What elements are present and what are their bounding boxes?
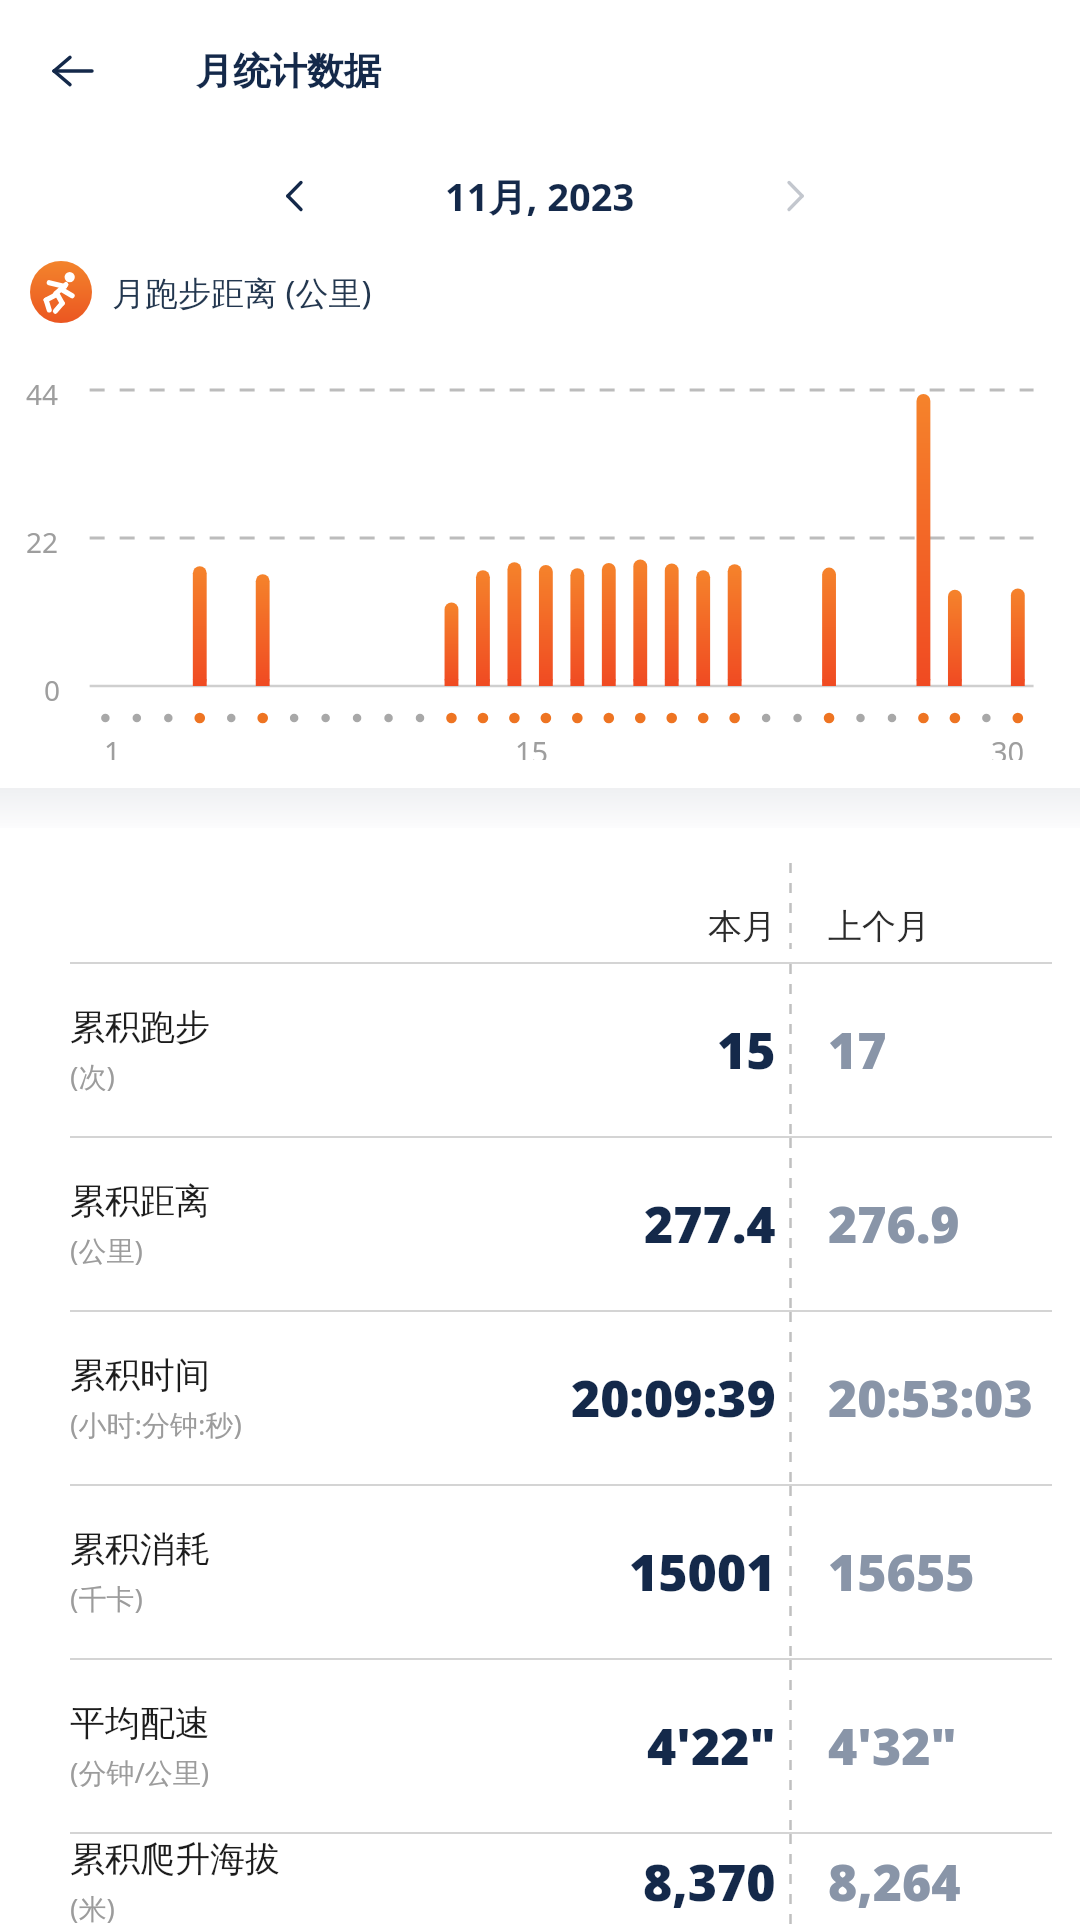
staticText: 4'22" <box>647 1712 776 1780</box>
staticText: 0 <box>44 671 61 709</box>
button[interactable]: 累积跑步 <box>28 964 1052 1136</box>
staticText: (分钟/公里) <box>70 1753 210 1791</box>
staticText: 277.4 <box>644 1190 776 1258</box>
staticText: 上个月 <box>828 905 930 948</box>
staticText: (次) <box>70 1057 115 1095</box>
staticText: (小时:分钟:秒) <box>70 1405 242 1443</box>
button[interactable]: 累积时间 <box>28 1312 1052 1484</box>
staticText: (公里) <box>70 1231 143 1269</box>
button[interactable]: 累积距离 <box>28 1138 1052 1310</box>
button[interactable]: 累积爬升海拔 <box>28 1834 1052 1930</box>
staticText: 276.9 <box>828 1190 960 1258</box>
staticText: 8,264 <box>828 1848 961 1916</box>
staticText: 15001 <box>629 1538 776 1606</box>
button[interactable]: 累积消耗 <box>28 1486 1052 1658</box>
staticText: 本月 <box>708 905 776 948</box>
staticText: 平均配速 <box>70 1701 210 1745</box>
staticText: 17 <box>828 1016 887 1084</box>
staticText: (千卡) <box>70 1579 143 1617</box>
staticText: 月统计数据 <box>196 48 381 95</box>
button[interactable]: Next month <box>758 159 832 233</box>
staticText: 累积跑步 <box>70 1005 210 1049</box>
staticText: 月跑步距离 (公里) <box>112 270 372 315</box>
button[interactable]: 平均配速 <box>28 1660 1052 1832</box>
staticText: 30 <box>991 732 1025 760</box>
staticText: (米) <box>70 1889 115 1927</box>
button[interactable]: 月跑步距离 (公里) <box>30 250 1080 334</box>
staticText: 22 <box>26 523 59 561</box>
staticText: 累积消耗 <box>70 1527 210 1571</box>
staticText: 15655 <box>828 1538 975 1606</box>
staticText: 累积时间 <box>70 1353 210 1397</box>
staticText: 累积爬升海拔 <box>70 1837 280 1881</box>
staticText: 11月, 2023 <box>445 170 635 222</box>
staticText: 15 <box>515 732 549 760</box>
staticText: 8,370 <box>643 1848 776 1916</box>
staticText: 20:09:39 <box>571 1364 776 1432</box>
staticText: 4'32" <box>828 1712 957 1780</box>
button[interactable]: Previous month <box>258 159 332 233</box>
staticText: 44 <box>26 375 59 413</box>
staticText: 20:53:03 <box>828 1364 1033 1432</box>
staticText: 15 <box>717 1016 776 1084</box>
button[interactable]: Back <box>34 33 110 109</box>
staticText: 1 <box>104 732 121 760</box>
staticText: 累积距离 <box>70 1179 210 1223</box>
